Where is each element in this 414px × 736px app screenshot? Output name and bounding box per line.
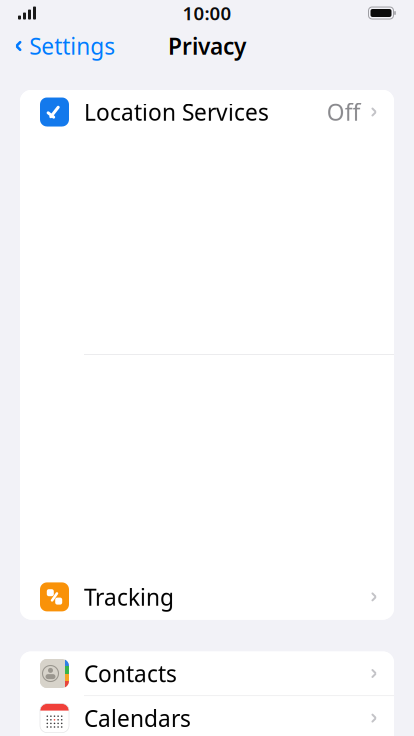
button[interactable]: Location Services — [20, 90, 394, 575]
staticText: Location Services — [84, 97, 269, 127]
staticText: Calendars — [84, 703, 191, 733]
staticText: Tracking — [84, 582, 174, 612]
staticText: Privacy — [168, 31, 246, 61]
button[interactable]: Calendars — [20, 696, 394, 736]
button[interactable]: Tracking — [20, 575, 394, 619]
staticText: 10:00 — [182, 1, 231, 25]
button[interactable]: Contacts — [20, 651, 394, 696]
staticText: Contacts — [84, 658, 177, 688]
staticText: Off — [327, 97, 361, 127]
staticText: Settings — [29, 31, 115, 61]
button[interactable]: Settings — [0, 25, 125, 67]
